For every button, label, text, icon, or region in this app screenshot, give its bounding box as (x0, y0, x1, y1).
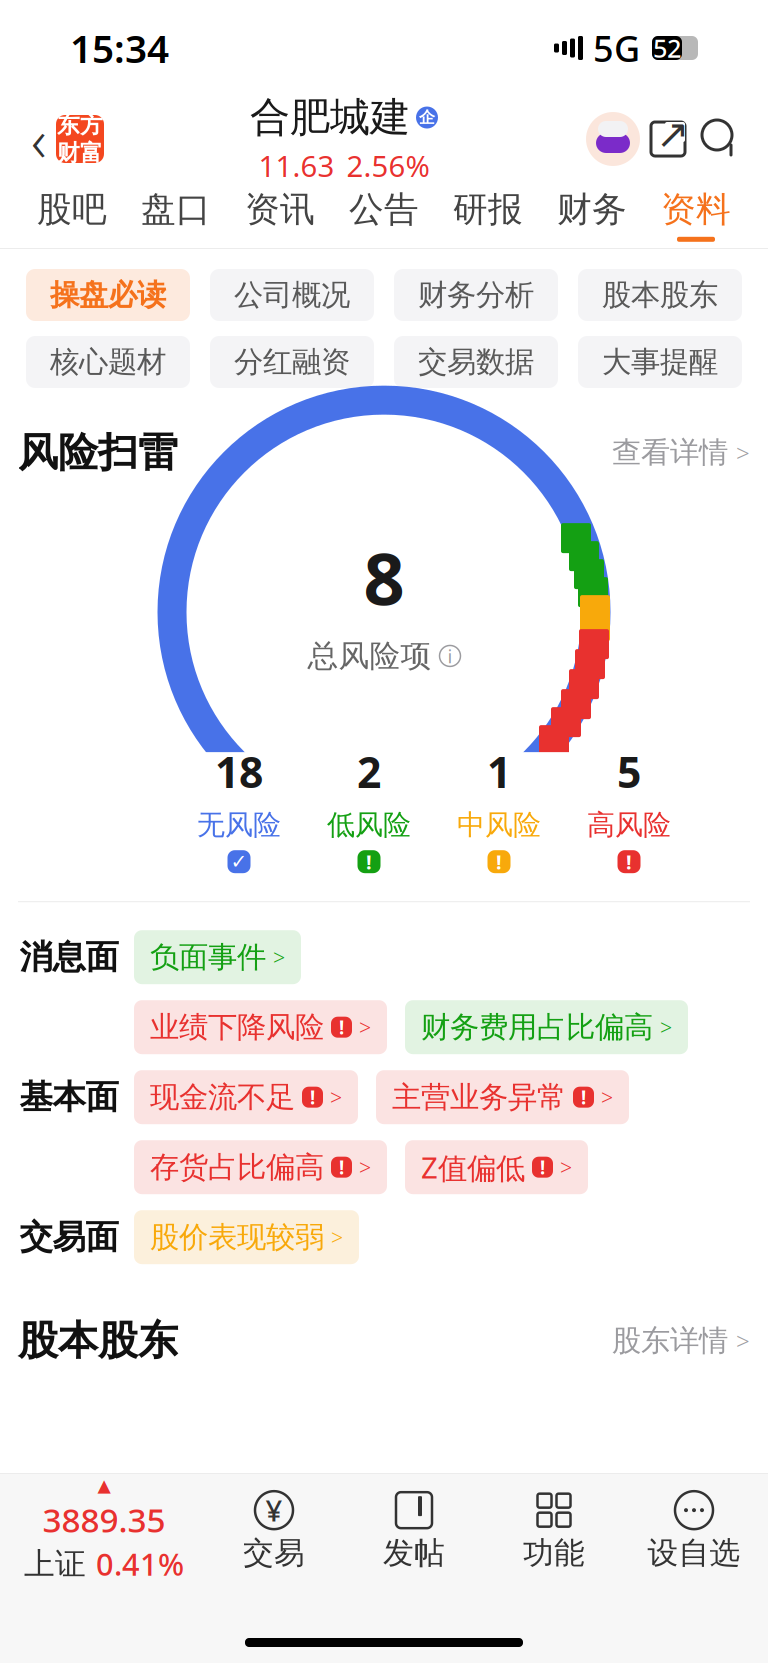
staticText: 8 (363, 529, 404, 625)
staticText: ✓ (230, 850, 247, 873)
staticText: > (601, 1083, 613, 1111)
button[interactable]: 股价表现较弱 (134, 1210, 359, 1264)
staticText: 查看详情 (612, 435, 728, 471)
staticText: ‹ (31, 100, 47, 178)
staticText: ! (581, 1085, 586, 1110)
staticText: > (359, 1153, 371, 1181)
button[interactable]: Z值偏低 (405, 1140, 588, 1194)
staticText: 设自选 (647, 1534, 740, 1572)
button[interactable]: 股东详情 (612, 1323, 750, 1359)
staticText: 资讯 (245, 188, 315, 231)
staticText: 东方 (57, 111, 103, 139)
button[interactable]: ▲ (4, 1474, 204, 1586)
button[interactable]: AI 助手 (584, 110, 642, 168)
staticText: ! (540, 1155, 545, 1180)
staticText: ! (339, 1015, 344, 1040)
button[interactable]: 资料 (644, 182, 748, 248)
staticText: 财富 (57, 139, 103, 167)
staticText: ↗ (656, 111, 690, 157)
button[interactable]: 交易数据 (394, 336, 558, 388)
staticText: 财务费用占比偏高 (421, 1009, 653, 1045)
button[interactable]: 资讯 (228, 182, 332, 248)
staticText: 交易 (243, 1534, 305, 1572)
button[interactable]: 存货占比偏高 (134, 1140, 387, 1194)
button[interactable]: 研报 (436, 182, 540, 248)
staticText: ! (496, 848, 502, 875)
button[interactable]: 分红融资 (210, 336, 374, 388)
staticText: > (736, 437, 750, 468)
staticText: 分红融资 (234, 344, 350, 380)
button[interactable]: 现金流不足 (134, 1070, 358, 1124)
staticText: 合肥城建 (250, 93, 410, 142)
staticText: > (330, 1083, 342, 1111)
staticText: 功能 (523, 1534, 585, 1572)
staticText: 3889.35 (42, 1497, 165, 1542)
button[interactable]: 公司概况 (210, 269, 374, 321)
staticText: ¥ (265, 1491, 282, 1530)
staticText: 财务 (557, 188, 627, 231)
button[interactable]: 业绩下降风险 (134, 1000, 387, 1054)
staticText: ! (339, 1155, 344, 1180)
staticText: 股本股东 (602, 277, 718, 313)
staticText: 中风险 (457, 808, 541, 842)
staticText: 业绩下降风险 (150, 1009, 324, 1045)
staticText: 主营业务异常 (392, 1079, 566, 1115)
staticText: ! (626, 848, 632, 875)
staticText: ! (366, 848, 372, 875)
button[interactable]: 操盘必读 (26, 269, 190, 321)
staticText: 企 (419, 108, 435, 127)
staticText: i (447, 643, 452, 668)
button[interactable]: Back (22, 111, 56, 167)
button[interactable]: 盘口 (124, 182, 228, 248)
button[interactable]: 主营业务异常 (376, 1070, 629, 1124)
button[interactable]: 股本股东 (578, 269, 742, 321)
button[interactable]: Share (642, 111, 694, 167)
button[interactable]: Search (694, 111, 746, 167)
button[interactable]: 发帖 (344, 1474, 484, 1586)
button[interactable]: 股吧 (20, 182, 124, 248)
staticText: > (660, 1013, 672, 1041)
staticText: 交易数据 (418, 344, 534, 380)
button[interactable]: 东方财富 首页 (56, 115, 104, 163)
staticText: ▲ (97, 1476, 110, 1495)
staticText: > (736, 1325, 750, 1357)
staticText: 存货占比偏高 (150, 1149, 324, 1185)
staticText: 无风险 (197, 808, 281, 842)
staticText: > (560, 1153, 572, 1181)
staticText: 2.56% (346, 146, 429, 185)
staticText: 高风险 (587, 808, 671, 842)
button[interactable]: 查看详情 (612, 435, 750, 471)
button[interactable]: 公告 (332, 182, 436, 248)
staticText: 2 (357, 743, 381, 800)
staticText: 发帖 (383, 1534, 445, 1572)
staticText: 18 (215, 743, 263, 800)
staticText: 公告 (349, 188, 419, 231)
button[interactable]: ¥ (204, 1474, 344, 1586)
button[interactable]: 财务 (540, 182, 644, 248)
staticText: 公司概况 (234, 277, 350, 313)
staticText: 11.63 (258, 146, 334, 185)
staticText: ! (310, 1085, 315, 1110)
staticText: 盘口 (141, 188, 211, 231)
staticText: 股吧 (37, 188, 107, 231)
staticText: 大事提醒 (602, 344, 718, 380)
staticText: > (331, 1223, 343, 1251)
staticText: 上证 (24, 1545, 86, 1583)
button[interactable]: 功能 (484, 1474, 624, 1586)
staticText: 总风险项 (307, 637, 431, 675)
button[interactable]: 财务费用占比偏高 (405, 1000, 688, 1054)
staticText: 风险扫雷 (18, 428, 178, 477)
staticText: 交易面 (19, 1217, 118, 1258)
button[interactable]: 财务分析 (394, 269, 558, 321)
staticText: 财务分析 (418, 277, 534, 313)
staticText: 资料 (661, 188, 731, 231)
staticText: 负面事件 (150, 939, 266, 975)
button[interactable]: 大事提醒 (578, 336, 742, 388)
staticText: 现金流不足 (150, 1079, 295, 1115)
staticText: > (359, 1013, 371, 1041)
button[interactable]: 设自选 (624, 1474, 764, 1586)
staticText: 股本股东 (18, 1316, 178, 1365)
button[interactable]: 核心题材 (26, 336, 190, 388)
button[interactable]: 负面事件 (134, 930, 301, 984)
staticText: 股价表现较弱 (150, 1219, 324, 1255)
